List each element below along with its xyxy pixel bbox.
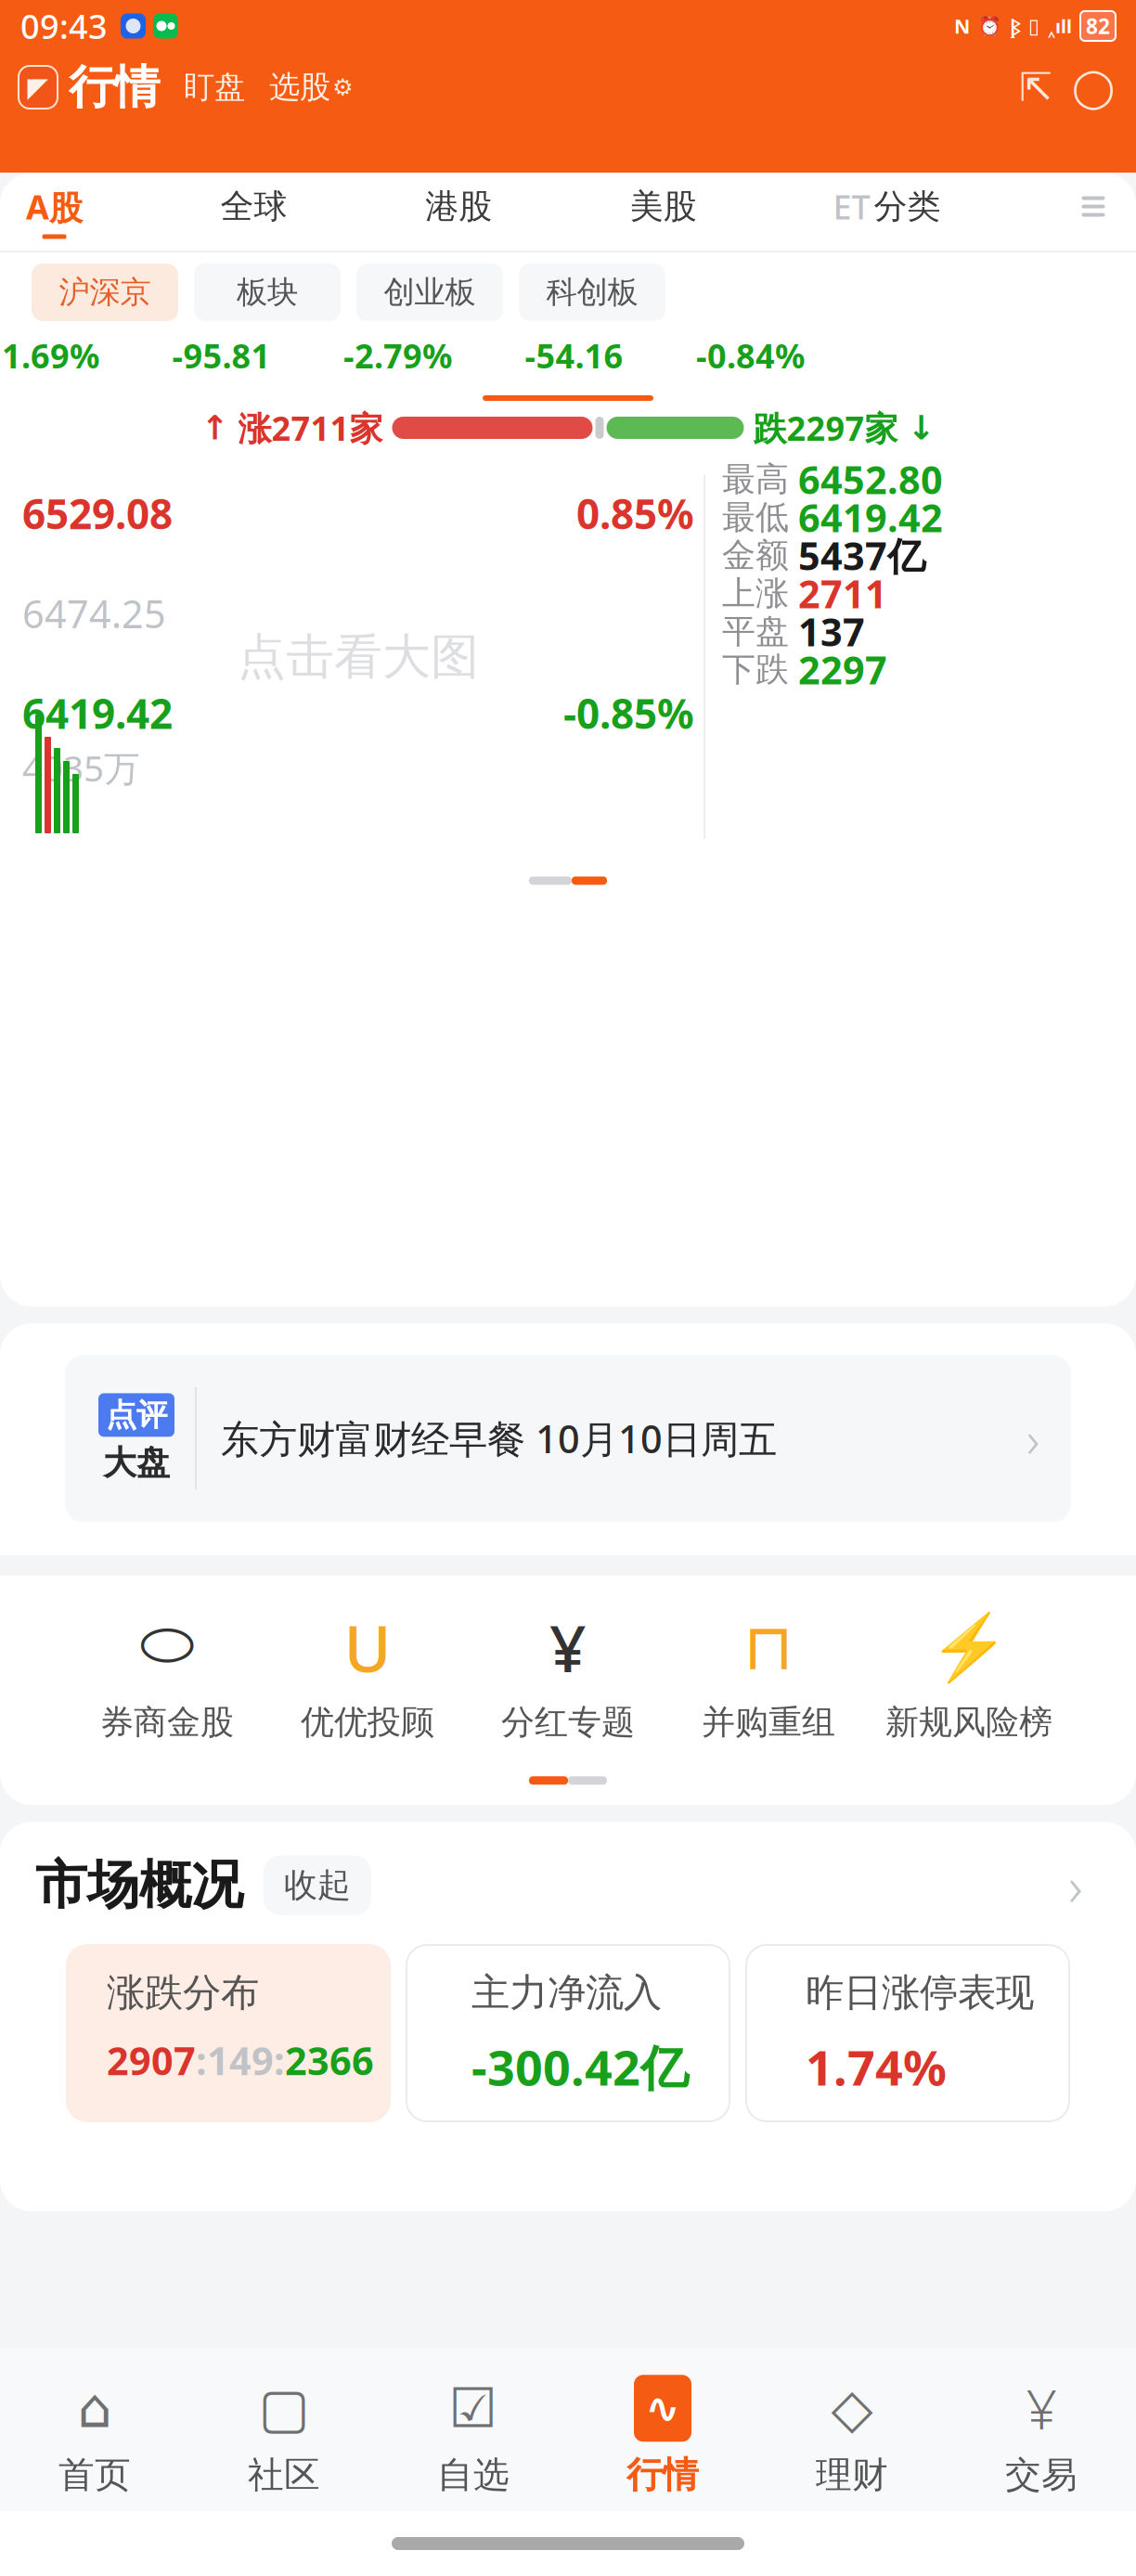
staticText: 新规风险榜 [885,1702,1052,1743]
staticText: 09:43 [20,4,108,48]
staticText: 1.69% [2,333,99,378]
staticText: 收起 [284,1865,351,1906]
button[interactable]: 科创板 [519,264,665,321]
staticText: 社区 [248,2453,320,2497]
button[interactable]: ¥ [468,1607,668,1743]
button[interactable]: U [267,1607,468,1743]
staticText: › [1068,1849,1083,1921]
button[interactable]: 主力净流入 [407,1945,729,2121]
button[interactable]: ⊓ [668,1607,869,1743]
button[interactable]: ◇ [757,2375,947,2497]
staticText: ¥ [1026,2372,1057,2444]
staticText: ‸ıll [1048,14,1072,38]
staticText: 行情 [626,2453,699,2497]
staticText: 6474.25 [22,588,166,639]
staticText: 创业板 [384,273,476,311]
staticText: 优优投顾 [301,1702,434,1743]
staticText: › [1026,1405,1039,1471]
staticText: ⏰ [978,15,1001,37]
staticText: 0.85% [576,486,694,540]
button[interactable]: ⬭ [67,1607,267,1743]
button[interactable]: ☑ [379,2375,568,2497]
staticText: U [344,1604,391,1690]
staticText: 149 [207,2035,274,2086]
staticText: 2366 [285,2035,374,2086]
staticText: 6419.42 [22,686,173,740]
staticText: 券商金股 [100,1702,234,1743]
staticText: 行情 [69,59,160,115]
staticText: 科创板 [546,273,638,311]
staticText: 昨日涨停表现 [806,1969,1034,2016]
staticText: 交易 [1005,2453,1078,2497]
staticText: ¥ [549,1604,587,1690]
staticText: -0.85% [563,686,694,740]
staticText: ⇱ [1019,65,1052,110]
button[interactable]: 美股 [628,186,699,237]
staticText: 点击看大图 [238,627,479,687]
staticText: -300.42亿 [471,2035,689,2099]
staticText: 137 [798,606,865,657]
button[interactable]: 港股 [423,186,494,237]
button[interactable]: 盯盘 [174,63,254,112]
staticText: -2.79% [343,333,452,378]
staticText: 分红专题 [501,1702,635,1743]
staticText: 选股 [269,68,330,106]
staticText: 沪深京 [59,273,151,311]
button[interactable]: 分类 [870,186,941,237]
staticText: 上涨 [722,573,789,614]
button[interactable]: Share [1012,63,1060,111]
button[interactable]: Search [1069,63,1117,111]
staticText: 4035万 [22,744,140,792]
staticText: : [196,2035,207,2086]
staticText: 82 [1086,12,1110,40]
button[interactable]: A股 [24,184,84,239]
button[interactable]: 创业板 [356,264,503,321]
staticText: 理财 [816,2453,888,2497]
button[interactable]: ¥ [947,2375,1136,2497]
button[interactable]: 板块 [194,264,341,321]
button[interactable]: 全球 [219,186,289,237]
staticText: 2297 [798,644,887,695]
staticText: 主力净流入 [471,1969,662,2016]
button[interactable]: 点评 [0,1355,1136,1522]
staticText: ET [833,184,870,229]
staticText: 分类 [874,186,941,227]
button[interactable]: 收起 [264,1855,371,1915]
button[interactable]: ⚡ [869,1607,1069,1743]
staticText: ◇ [831,2377,873,2439]
button[interactable]: ∿ [568,2375,757,2497]
staticText: : [274,2035,285,2086]
button[interactable]: More tabs [1075,196,1112,227]
button[interactable]: 昨日涨停表现 [746,1945,1069,2121]
staticText: -0.84% [696,333,805,378]
staticText: ⌂ [77,2377,112,2439]
button[interactable]: 沪深京 [32,264,178,321]
staticText: 大盘 [103,1442,170,1483]
staticText: ⚡ [929,1610,1009,1684]
staticText: 东方财富财经早餐 10月10日周五 [221,1413,777,1464]
button[interactable]: 选股 [264,63,359,112]
staticText: ∿ [645,2384,680,2432]
staticText: 6419.42 [798,492,943,543]
staticText: ◯ [1072,65,1115,109]
staticText: ☑ [449,2377,498,2439]
staticText: 首页 [58,2453,131,2497]
staticText: -95.81 [172,333,271,378]
staticText: ᛒ [1010,13,1020,39]
staticText: 并购重组 [702,1702,835,1743]
button[interactable]: More market overview [1051,1860,1101,1910]
staticText: 5437亿 [798,530,925,581]
button[interactable]: 涨跌分布 [67,1945,390,2121]
staticText: 6452.80 [798,454,943,505]
button[interactable]: ⌂ [0,2375,189,2497]
staticText: 6529.08 [22,486,173,540]
staticText: 平盘 [722,611,789,652]
staticText: 自选 [437,2453,510,2497]
staticText: 市场概况 [35,1853,243,1917]
staticText: 美股 [630,186,697,227]
button[interactable]: ▢ [189,2375,379,2497]
staticText: 港股 [425,186,492,227]
button[interactable]: ET [833,184,870,239]
staticText: 全球 [221,186,287,227]
staticText: 最高 [722,459,789,500]
